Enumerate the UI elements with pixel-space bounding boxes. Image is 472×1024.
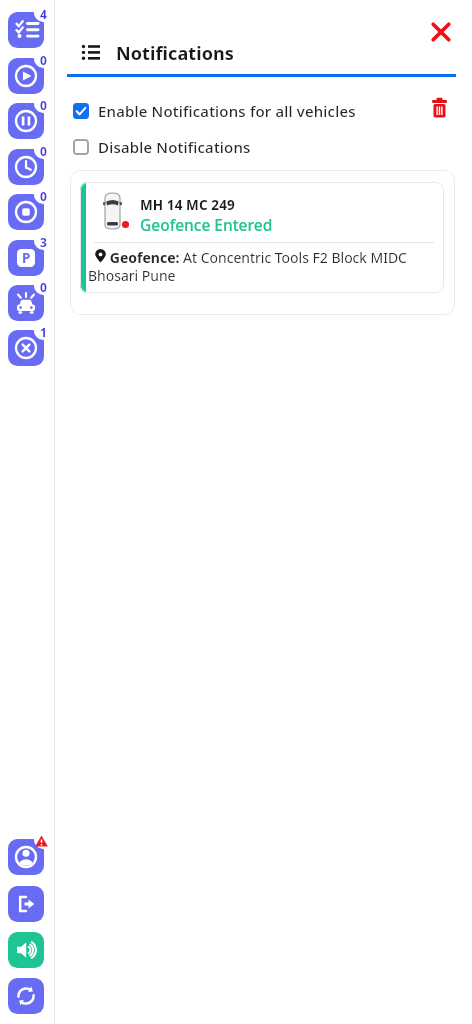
staticText: Geofence: At Concentric Tools F2 Block M… (88, 248, 440, 285)
staticText: Disable Notifications (98, 137, 251, 157)
button[interactable] (8, 12, 44, 48)
staticText: 4 (40, 6, 47, 22)
button[interactable]: Disable Notifications (73, 137, 251, 157)
staticText: 0 (40, 143, 47, 159)
button[interactable] (8, 285, 44, 321)
staticText: 0 (40, 279, 47, 295)
button[interactable] (8, 978, 44, 1014)
button[interactable] (8, 103, 44, 139)
staticText: MH 14 MC 249 (140, 196, 235, 214)
staticText: P (22, 249, 31, 267)
staticText: 0 (40, 52, 47, 68)
button[interactable] (8, 330, 44, 366)
staticText: Enable Notifications for all vehicles (98, 101, 356, 121)
button[interactable] (80, 182, 444, 293)
staticText: 0 (40, 188, 47, 204)
button[interactable]: Enable Notifications for all vehicles (73, 101, 356, 121)
staticText: 3 (40, 234, 47, 250)
button[interactable] (8, 58, 44, 94)
button[interactable] (8, 886, 44, 922)
button[interactable] (8, 194, 44, 230)
button[interactable] (431, 97, 448, 118)
button[interactable] (8, 932, 44, 968)
button[interactable] (8, 240, 44, 276)
button[interactable] (8, 839, 44, 875)
button[interactable] (8, 149, 44, 185)
button[interactable] (427, 18, 455, 46)
staticText: 0 (40, 97, 47, 113)
staticText: 1 (40, 324, 47, 340)
staticText: Notifications (116, 41, 234, 66)
staticText: Geofence Entered (140, 214, 273, 235)
